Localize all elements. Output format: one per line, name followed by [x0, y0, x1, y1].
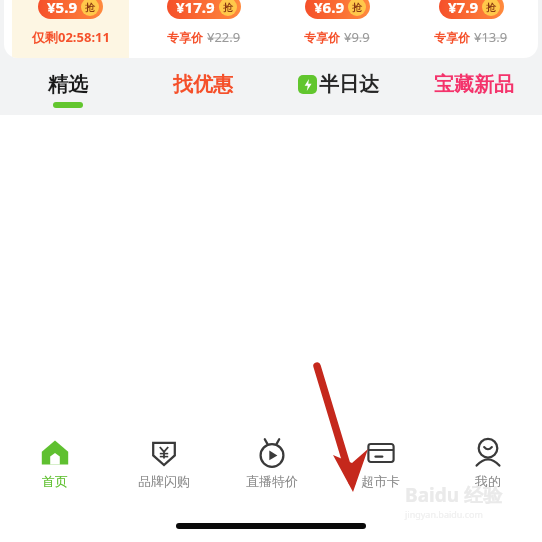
button[interactable]: 品牌闪购 — [109, 430, 218, 500]
staticText: 抢 — [352, 1, 362, 14]
staticText: 精选 — [48, 72, 88, 97]
button[interactable]: 超市卡 — [326, 430, 434, 500]
staticText: ¥17.9 — [176, 0, 215, 17]
staticText: 找优惠 — [173, 72, 233, 97]
button[interactable]: ¥7.9 — [412, 0, 530, 58]
staticText: jingyan.baidu.com — [405, 508, 483, 520]
staticText: ¥6.9 — [314, 0, 344, 17]
staticText: 宝藏新品 — [434, 72, 514, 97]
button[interactable]: ¥5.9 — [12, 0, 129, 58]
staticText: 抢 — [223, 1, 233, 14]
staticText: 专享价 — [434, 29, 474, 45]
button[interactable]: ¥6.9 — [278, 0, 396, 58]
staticText: ¥13.9 — [474, 28, 508, 46]
button[interactable]: 首页 — [0, 430, 109, 500]
staticText: ¥9.9 — [344, 28, 370, 46]
staticText: 超市卡 — [361, 473, 400, 489]
staticText: 专享价 — [167, 29, 207, 45]
staticText: ¥5.9 — [47, 0, 77, 17]
staticText: 抢 — [85, 1, 95, 14]
staticText: 半日达 — [319, 72, 379, 97]
staticText: ¥7.9 — [448, 0, 478, 17]
button[interactable]: 我的 — [434, 430, 542, 500]
staticText: Baidu 经验 — [405, 482, 502, 508]
staticText: 首页 — [42, 473, 68, 489]
button[interactable]: 直播特价 — [218, 430, 326, 500]
staticText: ¥22.9 — [207, 28, 241, 46]
button[interactable]: 半日达 — [270, 62, 406, 115]
button[interactable]: 宝藏新品 — [406, 62, 542, 115]
staticText: 仅剩02:58:11 — [32, 28, 110, 46]
staticText: 抢 — [486, 1, 496, 14]
button[interactable]: ¥17.9 — [145, 0, 262, 58]
staticText: 品牌闪购 — [138, 473, 190, 489]
staticText: 直播特价 — [246, 473, 298, 489]
button[interactable]: 找优惠 — [135, 62, 270, 115]
staticText: 我的 — [475, 473, 501, 489]
button[interactable]: 精选 — [0, 62, 135, 115]
staticText: 专享价 — [304, 29, 344, 45]
